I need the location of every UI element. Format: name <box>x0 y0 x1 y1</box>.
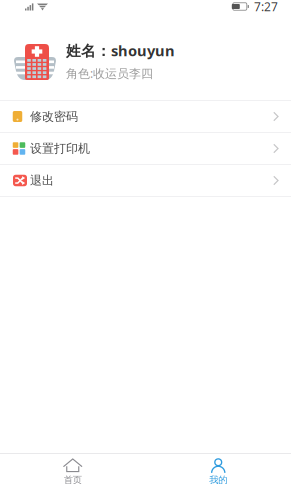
staticText: 姓名：shouyun <box>66 41 175 60</box>
staticText: 设置打印机 <box>30 141 90 156</box>
button[interactable]: 退出 <box>0 165 291 196</box>
staticText: 首页 <box>64 474 82 484</box>
button[interactable]: 我的 <box>145 454 291 484</box>
staticText: 角色:收运员李四 <box>66 65 153 81</box>
staticText: 7:27 <box>254 0 278 14</box>
staticText: 退出 <box>30 173 54 188</box>
button[interactable]: 设置打印机 <box>0 133 291 164</box>
button[interactable]: 修改密码 <box>0 101 291 132</box>
staticText: 修改密码 <box>30 109 78 124</box>
button[interactable]: 首页 <box>0 454 145 484</box>
staticText: 我的 <box>209 474 227 484</box>
